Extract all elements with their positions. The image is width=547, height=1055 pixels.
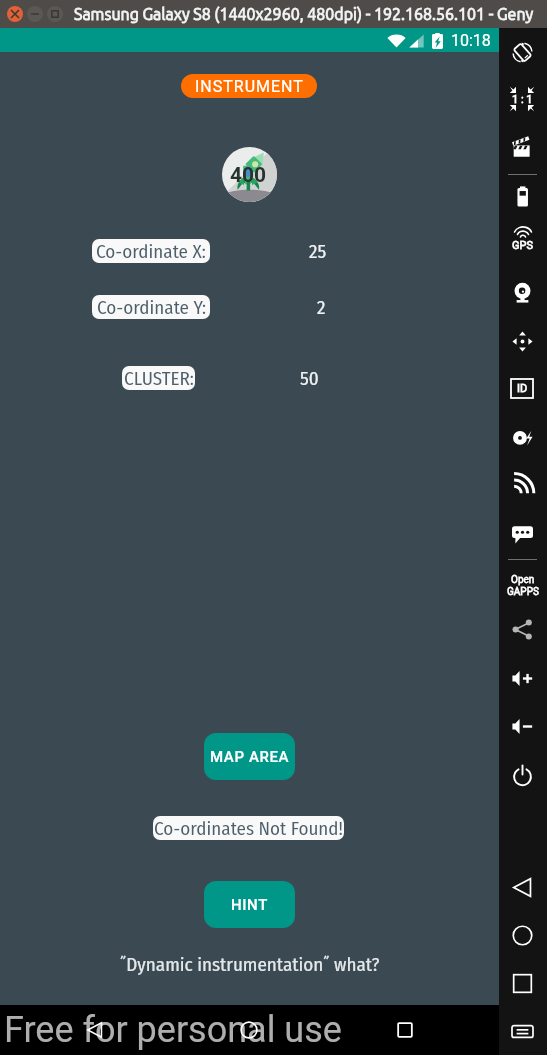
staticText: 400 [230,163,267,188]
button[interactable]: Minimise [27,6,43,22]
staticText: Open [511,574,535,586]
button[interactable]: CLUSTER: [122,366,195,390]
staticText: Samsung Galaxy S8 (1440x2960, 480dpi) - … [74,5,534,23]
staticText: 2 [317,296,326,319]
button[interactable]: Maximise [47,6,63,22]
button[interactable]: Volume down [506,710,538,742]
button[interactable]: Battery [506,180,538,212]
button[interactable]: Co-ordinates Not Found! [153,816,344,840]
button[interactable]: INSTRUMENT [181,74,317,98]
button[interactable]: Back [79,1014,111,1046]
button[interactable]: Disk IO [506,421,538,453]
button[interactable]: GPS [502,228,542,260]
button[interactable]: Network [506,468,538,500]
button[interactable]: Co-ordinate Y: [92,295,210,319]
staticText: 1 : 1 [512,93,533,106]
button[interactable]: Navigation [506,325,538,357]
staticText: HINT [231,896,268,914]
button[interactable]: Co-ordinate X: [92,239,210,263]
staticText: MAP AREA [210,748,290,766]
button[interactable]: Recents [506,967,538,999]
staticText: Co-ordinate Y: [97,296,206,319]
button[interactable]: OpenGApps [499,569,547,603]
button[interactable]: Messages [506,517,538,549]
button[interactable]: Camera [506,276,538,308]
staticText: Co-ordinates Not Found! [154,817,343,840]
button[interactable]: Keyboard [506,1015,538,1047]
button[interactable]: Home [506,919,538,951]
staticText: 50 [300,367,319,390]
staticText: CLUSTER: [124,367,194,390]
button[interactable]: Identifiers [507,376,537,400]
button[interactable]: Share [506,613,538,645]
button[interactable]: Back [506,871,538,903]
staticText: 10:18 [451,31,491,50]
staticText: Free for personal use [4,1009,342,1051]
button[interactable]: Home [233,1014,265,1046]
button[interactable]: HINT [204,881,295,928]
button[interactable]: MAP AREA [204,733,295,780]
staticText: INSTRUMENT [195,77,304,96]
button[interactable]: Close [7,6,23,22]
button[interactable]: Scale 1:1 [506,83,538,115]
button[interactable]: Rotate [506,36,538,68]
staticText: GPS [512,239,533,252]
staticText: Co-ordinate X: [96,240,206,263]
staticText: GAPPS [507,586,539,598]
staticText: 25 [309,240,327,263]
button[interactable]: Volume up [506,662,538,694]
staticText: ID [517,382,528,395]
button[interactable]: Screencast [506,131,538,163]
button[interactable]: Recents [389,1014,421,1046]
button[interactable]: Power [506,759,538,791]
staticText: ˝Dynamic instrumentation˝ what? [120,953,380,976]
